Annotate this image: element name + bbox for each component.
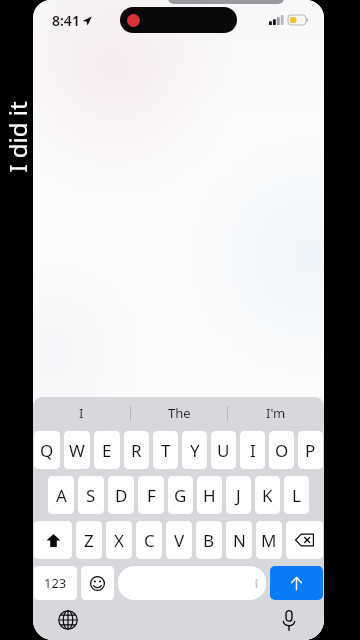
button[interactable]: X (106, 521, 132, 559)
staticText: 8:41 (52, 11, 80, 30)
staticText: E (102, 439, 112, 462)
staticText: K (262, 484, 273, 507)
staticText: D (115, 484, 128, 507)
staticText: T (161, 439, 171, 462)
button[interactable]: Change keyboard language (53, 605, 83, 635)
staticText: F (147, 484, 156, 507)
staticText: P (305, 439, 316, 462)
button[interactable]: L (284, 476, 309, 514)
button[interactable] (118, 566, 266, 600)
button[interactable]: A (48, 476, 74, 514)
button[interactable]: I (33, 397, 130, 429)
staticText: S (86, 484, 96, 507)
button[interactable]: Y (182, 431, 207, 469)
button[interactable]: K (255, 476, 280, 514)
button[interactable]: U (211, 431, 236, 469)
button[interactable]: O (269, 431, 294, 469)
staticText: G (174, 484, 187, 507)
button[interactable]: N (226, 521, 252, 559)
button[interactable]: M (256, 521, 282, 559)
button[interactable]: D (108, 476, 134, 514)
staticText: I did it (1, 101, 34, 173)
button[interactable]: P (298, 431, 323, 469)
staticText: The (168, 404, 191, 422)
staticText: L (292, 484, 301, 507)
button[interactable]: J (226, 476, 251, 514)
staticText: Z (84, 529, 94, 552)
button[interactable]: S (78, 476, 104, 514)
button[interactable]: I (240, 431, 265, 469)
button[interactable]: 123 (34, 566, 77, 600)
button[interactable]: G (168, 476, 193, 514)
staticText: I (79, 404, 84, 422)
staticText: H (203, 484, 216, 507)
staticText: I'm (266, 404, 286, 422)
button[interactable]: I'm (228, 397, 324, 429)
button[interactable]: B (196, 521, 222, 559)
staticText: B (203, 529, 215, 552)
button[interactable]: Send (270, 566, 323, 600)
staticText: Y (190, 439, 200, 462)
button[interactable]: C (136, 521, 162, 559)
staticText: V (174, 529, 185, 552)
button[interactable]: Emoji (81, 566, 114, 600)
staticText: O (275, 439, 289, 462)
staticText: X (114, 529, 124, 552)
button[interactable]: H (197, 476, 222, 514)
button[interactable]: T (153, 431, 178, 469)
button[interactable]: The (131, 397, 227, 429)
button[interactable]: Q (34, 431, 60, 469)
button[interactable]: F (138, 476, 164, 514)
button[interactable]: W (64, 431, 90, 469)
staticText: M (261, 529, 277, 552)
staticText: R (131, 439, 142, 462)
staticText: N (233, 529, 246, 552)
button[interactable]: V (166, 521, 192, 559)
button[interactable]: R (124, 431, 149, 469)
button[interactable]: Dictate (274, 605, 304, 635)
staticText: W (69, 439, 85, 462)
button[interactable]: Backspace (286, 521, 323, 559)
staticText: U (217, 439, 230, 462)
staticText: C (144, 529, 155, 552)
staticText: A (56, 484, 67, 507)
staticText: Q (40, 439, 54, 462)
staticText: 123 (44, 574, 67, 592)
staticText: I (250, 439, 256, 462)
button[interactable]: E (94, 431, 120, 469)
button[interactable]: Z (76, 521, 102, 559)
button[interactable]: Shift (34, 521, 72, 559)
staticText: J (236, 484, 241, 507)
